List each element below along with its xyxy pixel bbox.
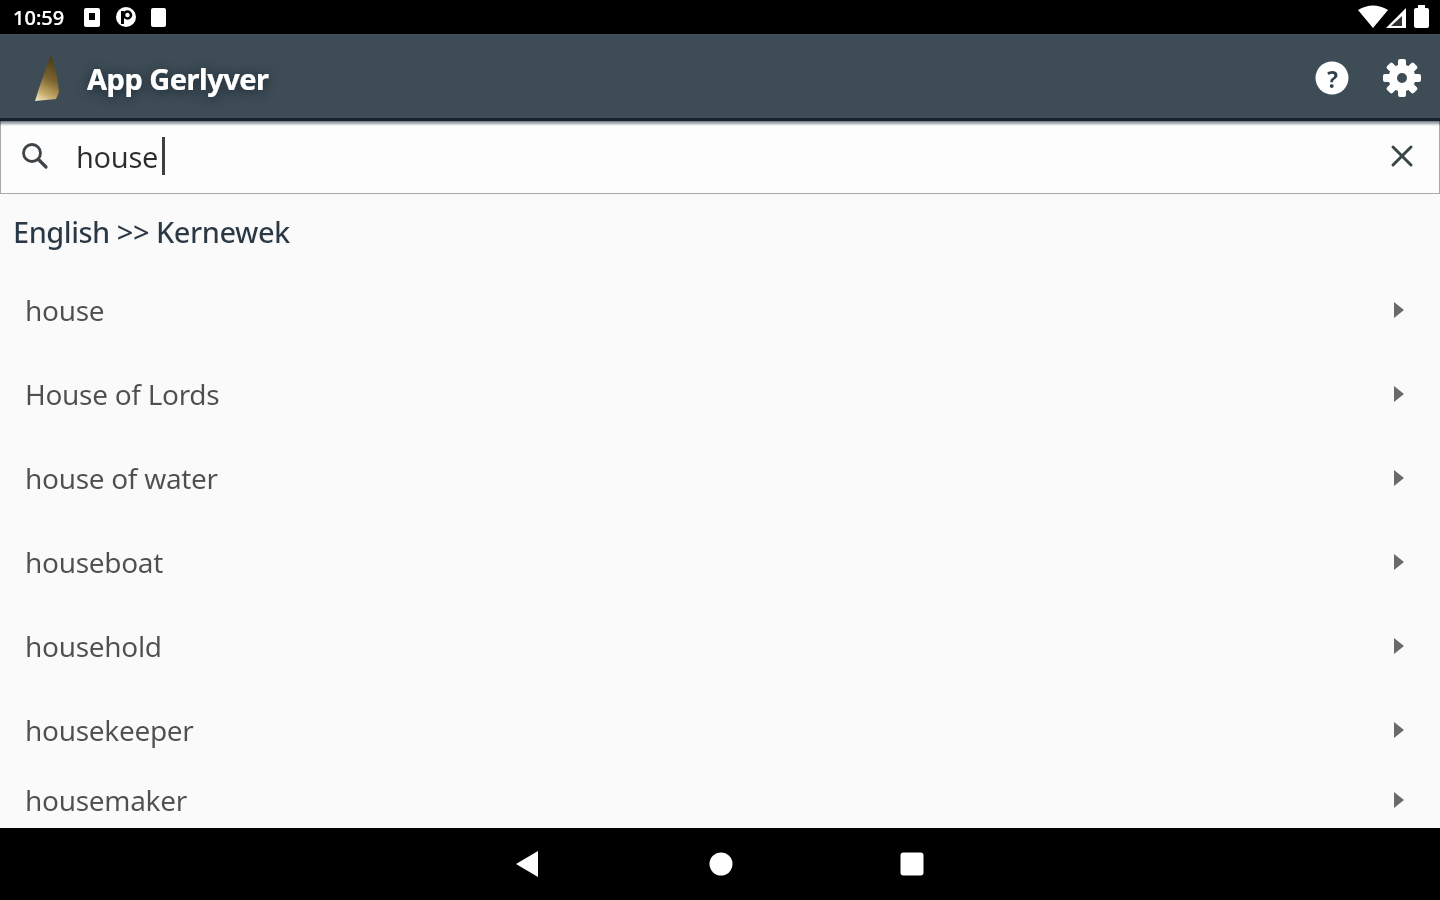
staticText: houseboat	[25, 543, 164, 581]
button[interactable]	[1377, 131, 1427, 181]
staticText: House of Lords	[25, 375, 220, 413]
staticText: housemaker	[25, 781, 187, 819]
staticText: house of water	[25, 459, 218, 497]
button[interactable]: House of Lords	[0, 352, 1440, 436]
staticText: ?	[1327, 63, 1338, 94]
staticText: housekeeper	[25, 711, 194, 749]
button[interactable]: house	[0, 118, 1440, 194]
button[interactable]: ?	[1310, 56, 1354, 100]
button[interactable]	[504, 840, 552, 888]
button[interactable]: housekeeper	[0, 688, 1440, 772]
button[interactable]: houseboat	[0, 520, 1440, 604]
button[interactable]	[697, 840, 745, 888]
staticText: English >> Kernewek	[13, 212, 290, 251]
button[interactable]	[888, 840, 936, 888]
staticText: App Gerlyver	[87, 59, 269, 98]
button[interactable]: housemaker	[0, 772, 1440, 828]
button[interactable]: house	[0, 268, 1440, 352]
button[interactable]: household	[0, 604, 1440, 688]
staticText: house	[25, 291, 105, 329]
staticText: 10:59	[13, 4, 65, 31]
staticText: household	[25, 627, 162, 665]
button[interactable]: house of water	[0, 436, 1440, 520]
staticText: house	[76, 137, 159, 176]
button[interactable]	[1380, 56, 1424, 100]
